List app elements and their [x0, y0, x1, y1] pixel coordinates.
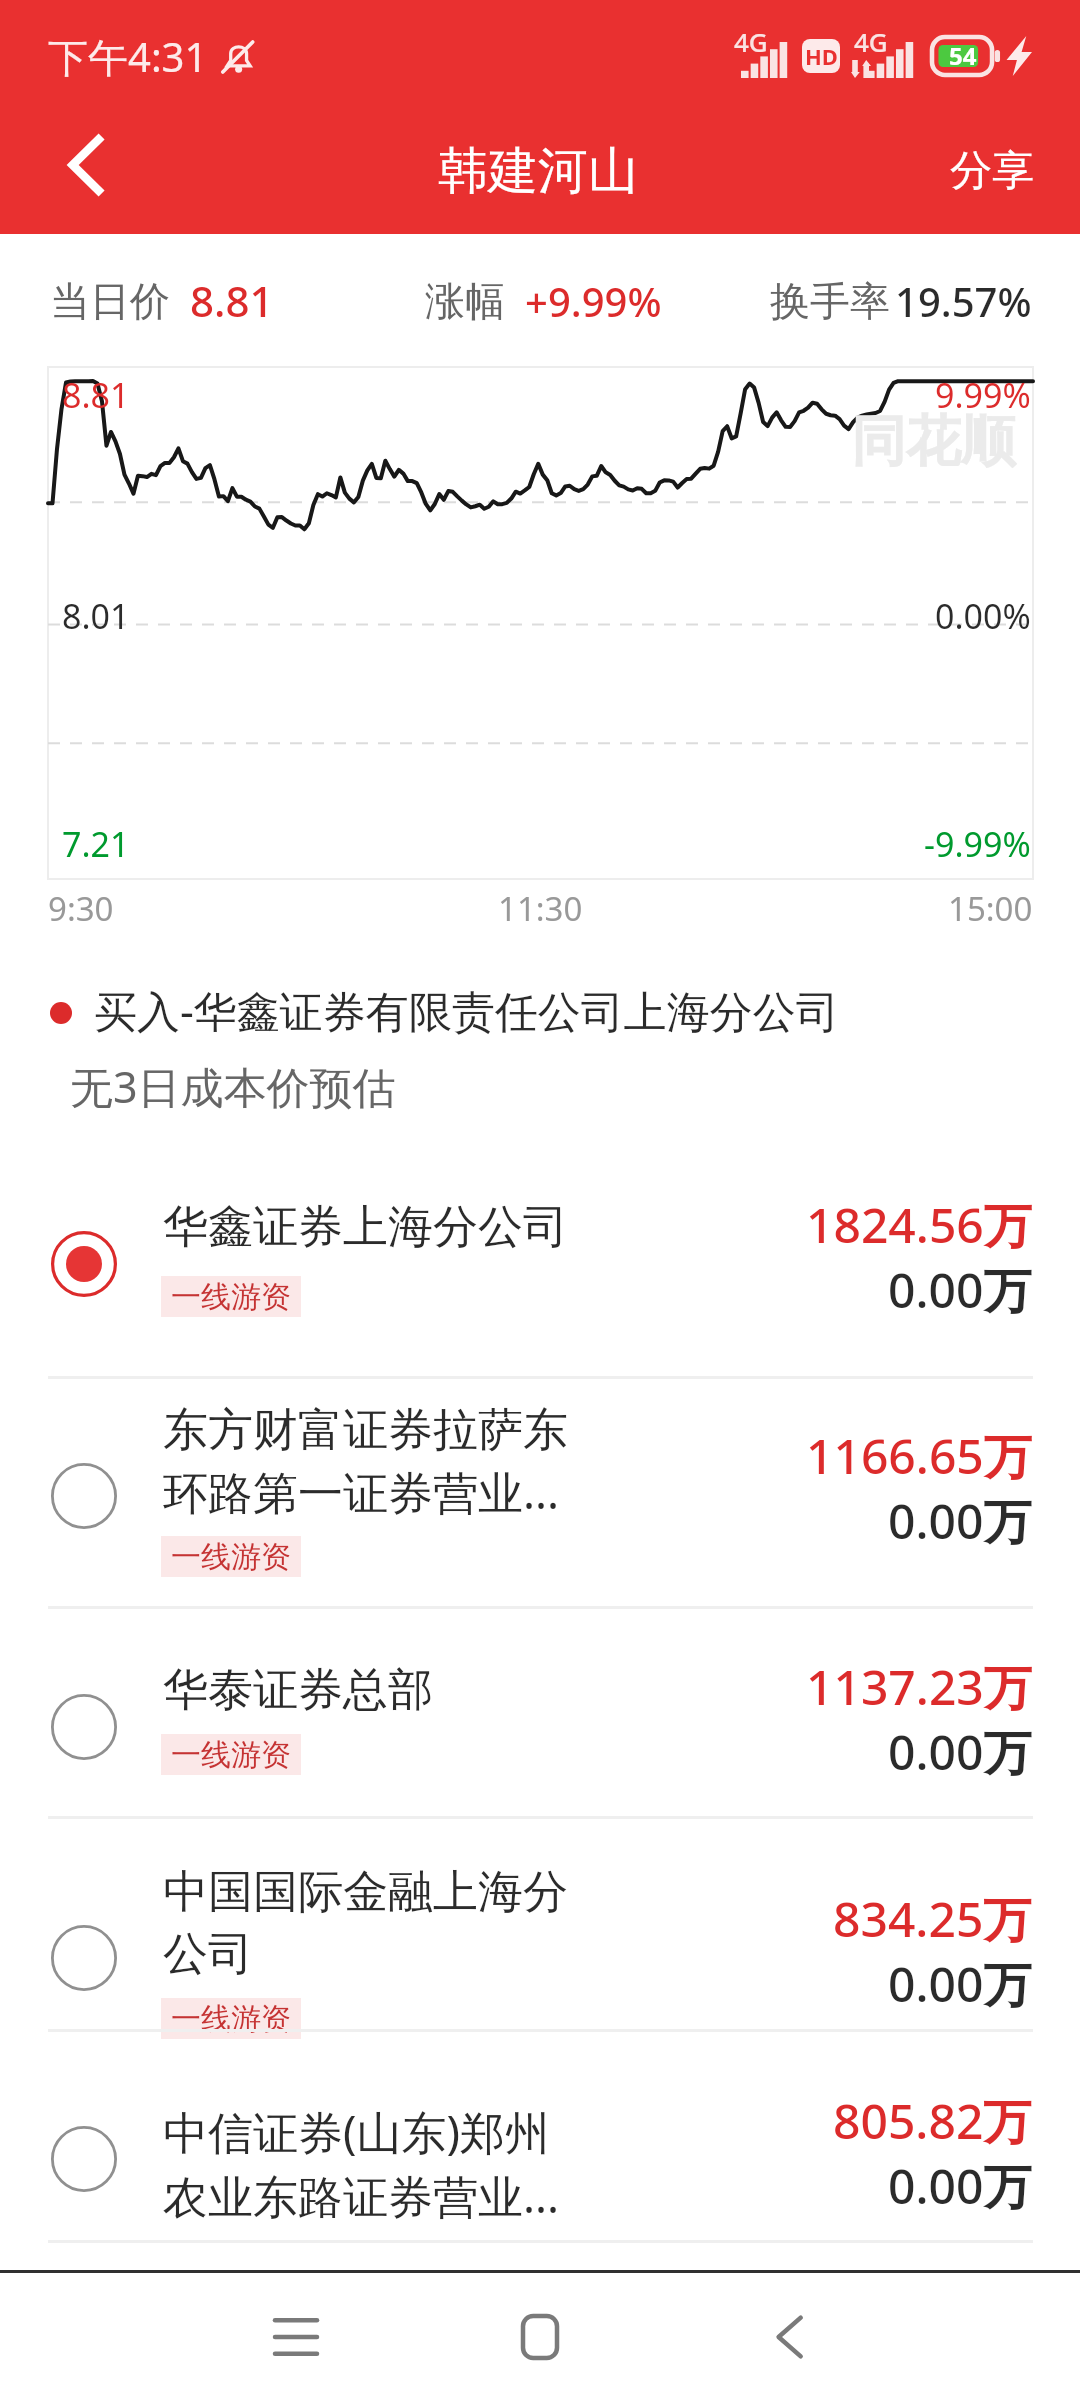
button[interactable]: 中信证券(山东)郑州农业东路证券营业...: [0, 2032, 1080, 2240]
staticText: 中信证券(山东)郑州农业东路证券营业...: [163, 2101, 575, 2226]
button[interactable]: Back: [0, 112, 150, 234]
staticText: 11:30: [498, 886, 583, 931]
staticText: -9.99%: [924, 821, 1031, 867]
staticText: 4G: [854, 24, 888, 59]
staticText: 分享: [950, 145, 1034, 198]
staticText: 一线游资: [171, 1736, 291, 1774]
staticText: 华泰证券总部: [163, 1662, 433, 1719]
staticText: 0.00万: [888, 1257, 1032, 1323]
staticText: 15:00: [948, 886, 1033, 931]
staticText: 1824.56万: [806, 1192, 1032, 1258]
staticText: 东方财富证券拉萨东环路第一证券营业...: [163, 1402, 575, 1522]
staticText: 8.01: [62, 593, 130, 639]
button[interactable]: 东方财富证券拉萨东环路第一证券营业...: [0, 1379, 1080, 1606]
staticText: 8.81: [190, 272, 274, 329]
staticText: 834.25万: [833, 1886, 1032, 1952]
staticText: 9:30: [48, 886, 114, 931]
button[interactable]: Home: [420, 2273, 660, 2400]
staticText: 8.81: [62, 372, 130, 418]
staticText: 中国国际金融上海分公司: [163, 1864, 575, 1982]
button[interactable]: Back: [669, 2273, 909, 2400]
staticText: 一线游资: [171, 1278, 291, 1316]
staticText: 0.00万: [888, 2153, 1032, 2219]
staticText: 同花顺: [851, 407, 1016, 476]
staticText: 0.00万: [888, 1488, 1032, 1554]
staticText: HD: [805, 41, 838, 71]
staticText: 下午4:31: [48, 29, 208, 84]
staticText: 7.21: [62, 821, 130, 867]
staticText: 涨幅: [425, 276, 505, 326]
button[interactable]: Recent apps: [176, 2273, 416, 2400]
staticText: 换手率: [770, 276, 890, 326]
staticText: +9.99%: [525, 274, 662, 328]
button[interactable]: 华泰证券总部: [0, 1609, 1080, 1816]
staticText: 1166.65万: [806, 1423, 1032, 1489]
staticText: 0.00万: [888, 1951, 1032, 2017]
staticText: 4G: [734, 24, 768, 59]
staticText: 0.00%: [935, 593, 1031, 639]
button[interactable]: 分享: [910, 112, 1080, 234]
staticText: 一线游资: [171, 2000, 291, 2038]
staticText: 1137.23万: [806, 1654, 1032, 1720]
staticText: 805.82万: [833, 2088, 1032, 2154]
staticText: 韩建河山: [438, 140, 638, 203]
staticText: 一线游资: [171, 1538, 291, 1576]
staticText: 19.57%: [895, 274, 1032, 328]
staticText: 当日价: [50, 276, 170, 326]
staticText: 买入-华鑫证券有限责任公司上海分公司: [94, 981, 839, 1040]
staticText: 9.99%: [935, 372, 1031, 418]
staticText: 无3日成本价预估: [70, 1057, 396, 1116]
button[interactable]: 华鑫证券上海分公司: [0, 1096, 1080, 1376]
staticText: 0.00万: [888, 1719, 1032, 1785]
staticText: 华鑫证券上海分公司: [163, 1199, 568, 1256]
button[interactable]: 中国国际金融上海分公司: [0, 1819, 1080, 2029]
staticText: 54: [949, 39, 977, 72]
